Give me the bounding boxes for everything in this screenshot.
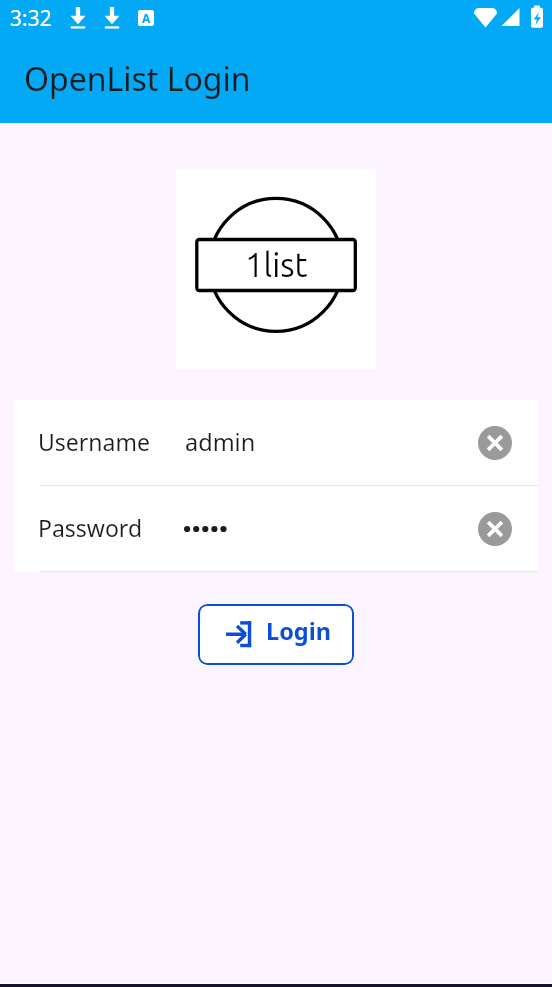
staticText: OpenList Login bbox=[24, 57, 251, 101]
button[interactable]: Clear Username bbox=[478, 426, 512, 460]
button[interactable]: Password bbox=[14, 486, 538, 571]
staticText: Username bbox=[38, 426, 150, 457]
staticText: Login bbox=[266, 615, 331, 647]
button[interactable]: Login bbox=[198, 604, 354, 665]
staticText: admin bbox=[185, 426, 256, 458]
staticText: 1list bbox=[245, 246, 308, 283]
staticText: 3:32 bbox=[10, 4, 52, 33]
button[interactable]: Username bbox=[14, 400, 538, 485]
staticText: Password bbox=[38, 512, 143, 543]
staticText: A bbox=[142, 10, 151, 26]
button[interactable]: Clear Password bbox=[478, 512, 512, 546]
